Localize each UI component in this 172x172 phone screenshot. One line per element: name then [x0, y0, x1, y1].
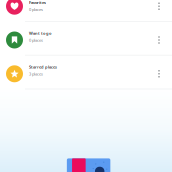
button[interactable]: Starred places [0, 56, 172, 89]
staticText: Starred places [29, 64, 57, 70]
staticText: 3 places [29, 71, 43, 77]
button[interactable]: More options [152, 56, 166, 89]
button[interactable]: Want to go [0, 22, 172, 55]
button[interactable]: More options [152, 0, 166, 21]
staticText: Favorites [29, 0, 46, 5]
staticText: 0 places [29, 37, 43, 43]
button[interactable]: Favorites [0, 0, 172, 21]
button[interactable]: More options [152, 22, 166, 55]
staticText: 0 places [29, 7, 43, 12]
staticText: Want to go [29, 30, 51, 36]
